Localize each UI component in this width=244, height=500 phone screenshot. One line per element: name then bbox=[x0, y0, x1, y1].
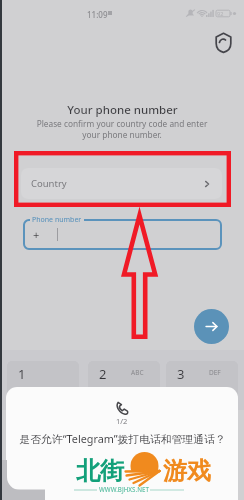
staticText: 北街 bbox=[76, 456, 124, 486]
staticText: 是否允许“Telegram”拨打电话和管理通话？ bbox=[19, 431, 226, 446]
staticText: 游戏 bbox=[163, 456, 211, 486]
button[interactable]: + bbox=[23, 219, 222, 250]
staticText: 1/2 bbox=[116, 416, 128, 426]
button[interactable]: Country bbox=[21, 168, 222, 199]
staticText: 2 bbox=[99, 365, 107, 383]
staticText: 1 bbox=[18, 365, 26, 383]
button[interactable]: Next bbox=[194, 309, 229, 344]
staticText: + bbox=[33, 227, 40, 242]
staticText: WWW.BJHXS.NET bbox=[99, 485, 149, 493]
button[interactable]: 2 bbox=[88, 361, 160, 403]
button[interactable]: Privacy and security bbox=[215, 32, 232, 53]
staticText: 11:09 bbox=[87, 9, 108, 20]
staticText: 92 bbox=[217, 10, 224, 17]
staticText: DEF bbox=[209, 368, 221, 377]
staticText: Please confirm your country code and ent… bbox=[0, 118, 244, 140]
staticText: Country bbox=[31, 177, 67, 190]
button[interactable]: 1 bbox=[7, 361, 79, 403]
staticText: Your phone number bbox=[67, 102, 178, 118]
staticText: 3 bbox=[177, 365, 185, 383]
staticText: ABC bbox=[131, 368, 144, 377]
staticText: Phone number bbox=[32, 215, 82, 225]
button[interactable]: 3 bbox=[166, 361, 238, 403]
